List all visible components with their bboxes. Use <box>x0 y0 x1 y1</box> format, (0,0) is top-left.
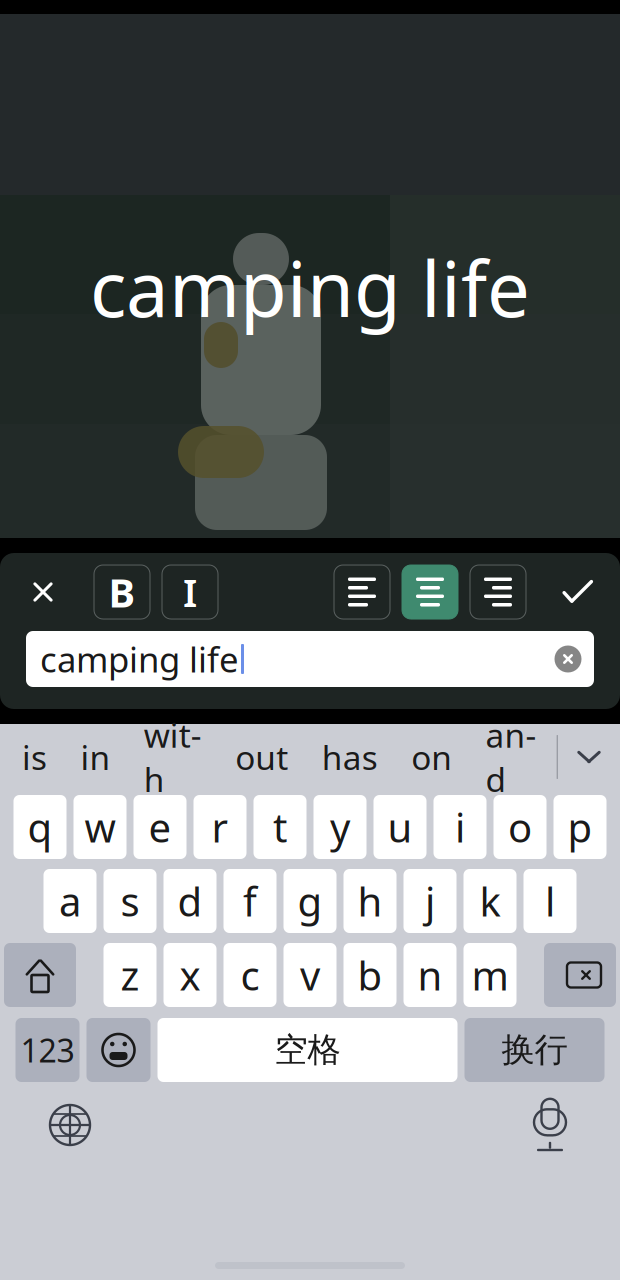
staticText: u <box>387 800 412 853</box>
button[interactable]: j <box>403 869 456 933</box>
button[interactable]: is <box>6 731 63 783</box>
staticText: s <box>120 874 139 927</box>
staticText: g <box>297 874 322 927</box>
staticText: out <box>235 735 288 779</box>
staticText: is <box>22 735 47 779</box>
staticText: has <box>322 735 378 779</box>
button[interactable]: Delete <box>544 943 616 1007</box>
staticText: t <box>273 800 287 853</box>
button[interactable]: I <box>162 565 218 619</box>
staticText: y <box>330 800 350 853</box>
button[interactable]: c <box>223 943 276 1007</box>
button[interactable]: l <box>523 869 576 933</box>
button[interactable]: has <box>306 731 394 783</box>
staticText: in <box>80 735 110 779</box>
staticText: 空格 <box>274 1029 340 1070</box>
button[interactable]: 123 <box>15 1018 79 1082</box>
staticText: camping life <box>40 636 239 682</box>
staticText: b <box>357 948 382 1001</box>
staticText: c <box>240 948 259 1001</box>
staticText: with <box>144 713 202 801</box>
button[interactable]: i <box>433 795 486 859</box>
button[interactable]: u <box>373 795 426 859</box>
staticText: n <box>417 948 442 1001</box>
button[interactable]: f <box>223 869 276 933</box>
button[interactable]: 换行 <box>464 1018 604 1082</box>
button[interactable]: Dictate <box>510 1095 590 1155</box>
button[interactable]: out <box>219 731 304 783</box>
staticText: o <box>508 800 532 853</box>
button[interactable]: in <box>64 731 126 783</box>
button[interactable]: k <box>463 869 516 933</box>
button[interactable]: d <box>163 869 216 933</box>
staticText: and <box>486 713 537 801</box>
staticText: f <box>243 874 257 927</box>
staticText: h <box>357 874 382 927</box>
button[interactable]: y <box>313 795 366 859</box>
staticText: k <box>479 874 500 927</box>
staticText: e <box>148 800 171 853</box>
staticText: q <box>27 800 52 853</box>
button[interactable]: and <box>470 731 553 783</box>
staticText: d <box>177 874 202 927</box>
button[interactable]: Align left <box>334 565 390 619</box>
button[interactable]: with <box>128 731 218 783</box>
staticText: x <box>179 948 200 1001</box>
button[interactable]: a <box>43 869 96 933</box>
button[interactable]: Emoji <box>86 1018 150 1082</box>
button[interactable]: t <box>253 795 306 859</box>
button[interactable]: 空格 <box>157 1018 457 1082</box>
button[interactable]: on <box>395 731 468 783</box>
staticText: z <box>120 948 139 1001</box>
button[interactable]: r <box>193 795 246 859</box>
staticText: a <box>59 874 81 927</box>
staticText: v <box>300 948 320 1001</box>
staticText: w <box>84 800 115 853</box>
button[interactable]: Cancel <box>14 563 72 621</box>
button[interactable]: x <box>163 943 216 1007</box>
button[interactable]: Shift <box>4 943 76 1007</box>
staticText: on <box>411 735 452 779</box>
staticText: 换行 <box>501 1029 567 1070</box>
staticText: j <box>425 874 435 927</box>
staticText: B <box>108 565 135 618</box>
button[interactable]: Clear text <box>548 639 588 679</box>
button[interactable]: B <box>94 565 150 619</box>
button[interactable]: e <box>133 795 186 859</box>
button[interactable]: b <box>343 943 396 1007</box>
button[interactable]: Align center <box>402 565 458 619</box>
staticText: r <box>211 800 228 853</box>
button[interactable]: w <box>73 795 126 859</box>
button[interactable]: h <box>343 869 396 933</box>
staticText: p <box>567 800 592 853</box>
staticText: m <box>471 948 508 1001</box>
staticText: i <box>455 800 465 853</box>
button[interactable]: Align right <box>470 565 526 619</box>
button[interactable]: g <box>283 869 336 933</box>
button[interactable]: s <box>103 869 156 933</box>
button[interactable]: o <box>493 795 546 859</box>
button[interactable]: q <box>13 795 66 859</box>
button[interactable]: n <box>403 943 456 1007</box>
staticText: 123 <box>20 1029 74 1071</box>
button[interactable]: Next keyboard <box>30 1095 110 1155</box>
button[interactable]: m <box>463 943 516 1007</box>
staticText: l <box>545 874 555 927</box>
button[interactable]: Done <box>548 563 606 621</box>
button[interactable]: z <box>103 943 156 1007</box>
button[interactable]: v <box>283 943 336 1007</box>
button[interactable]: Hide suggestions <box>558 731 620 783</box>
staticText: I <box>183 566 197 618</box>
staticText: camping life <box>90 237 530 338</box>
button[interactable]: p <box>553 795 606 859</box>
